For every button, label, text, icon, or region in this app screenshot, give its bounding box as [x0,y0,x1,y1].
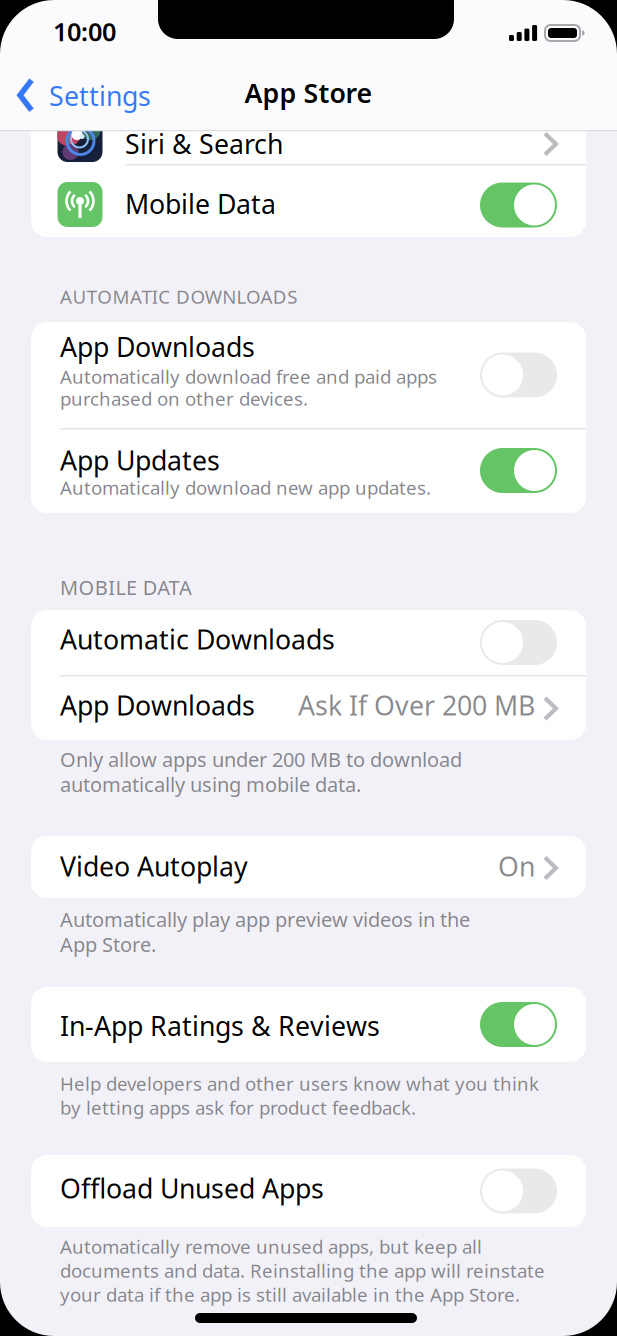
staticText: Automatic Downloads [60,621,335,657]
staticText: App Downloads [60,329,255,364]
button[interactable]: Automatic Downloads [480,620,557,665]
staticText: App Updates [60,442,220,478]
staticText: Automatically remove unused apps, but ke… [60,1234,482,1259]
button[interactable]: App Updates [480,448,557,493]
staticText: AUTOMATIC DOWNLOADS [60,284,297,309]
staticText: Ask If Over 200 MB [298,687,535,723]
staticText: by letting apps ask for product feedback… [60,1095,416,1120]
button[interactable]: Settings [20,78,151,113]
button[interactable]: App Downloads [31,675,586,740]
staticText: automatically using mobile data. [60,771,361,798]
staticText: purchased on other devices. [60,386,308,411]
staticText: App Store [244,75,372,110]
button[interactable]: Video Autoplay [31,836,586,898]
staticText: MOBILE DATA [60,574,192,601]
staticText: Automatically download free and paid app… [60,364,437,389]
staticText: App Store. [60,931,156,958]
staticText: In-App Ratings & Reviews [60,1008,380,1043]
staticText: Offload Unused Apps [60,1170,324,1206]
staticText: On [498,848,535,884]
staticText: Automatically play app preview videos in… [60,906,470,933]
staticText: Settings [49,78,151,113]
button[interactable]: Siri & Search [31,95,586,165]
button[interactable]: App Downloads [480,352,557,397]
staticText: Only allow apps under 200 MB to download [60,746,462,773]
staticText: App Downloads [60,687,255,723]
staticText: 10:00 [53,14,116,48]
staticText: documents and data. Reinstalling the app… [60,1258,545,1283]
staticText: Mobile Data [125,186,276,221]
staticText: Siri & Search [125,126,283,161]
staticText: Help developers and other users know wha… [60,1071,539,1096]
staticText: Automatically download new app updates. [60,475,431,500]
button[interactable]: In-App Ratings & Reviews [480,1002,557,1047]
staticText: Video Autoplay [60,848,248,884]
button[interactable]: Offload Unused Apps [480,1168,557,1213]
button[interactable]: Mobile Data [480,182,557,227]
staticText: your data if the app is still available … [60,1282,520,1307]
